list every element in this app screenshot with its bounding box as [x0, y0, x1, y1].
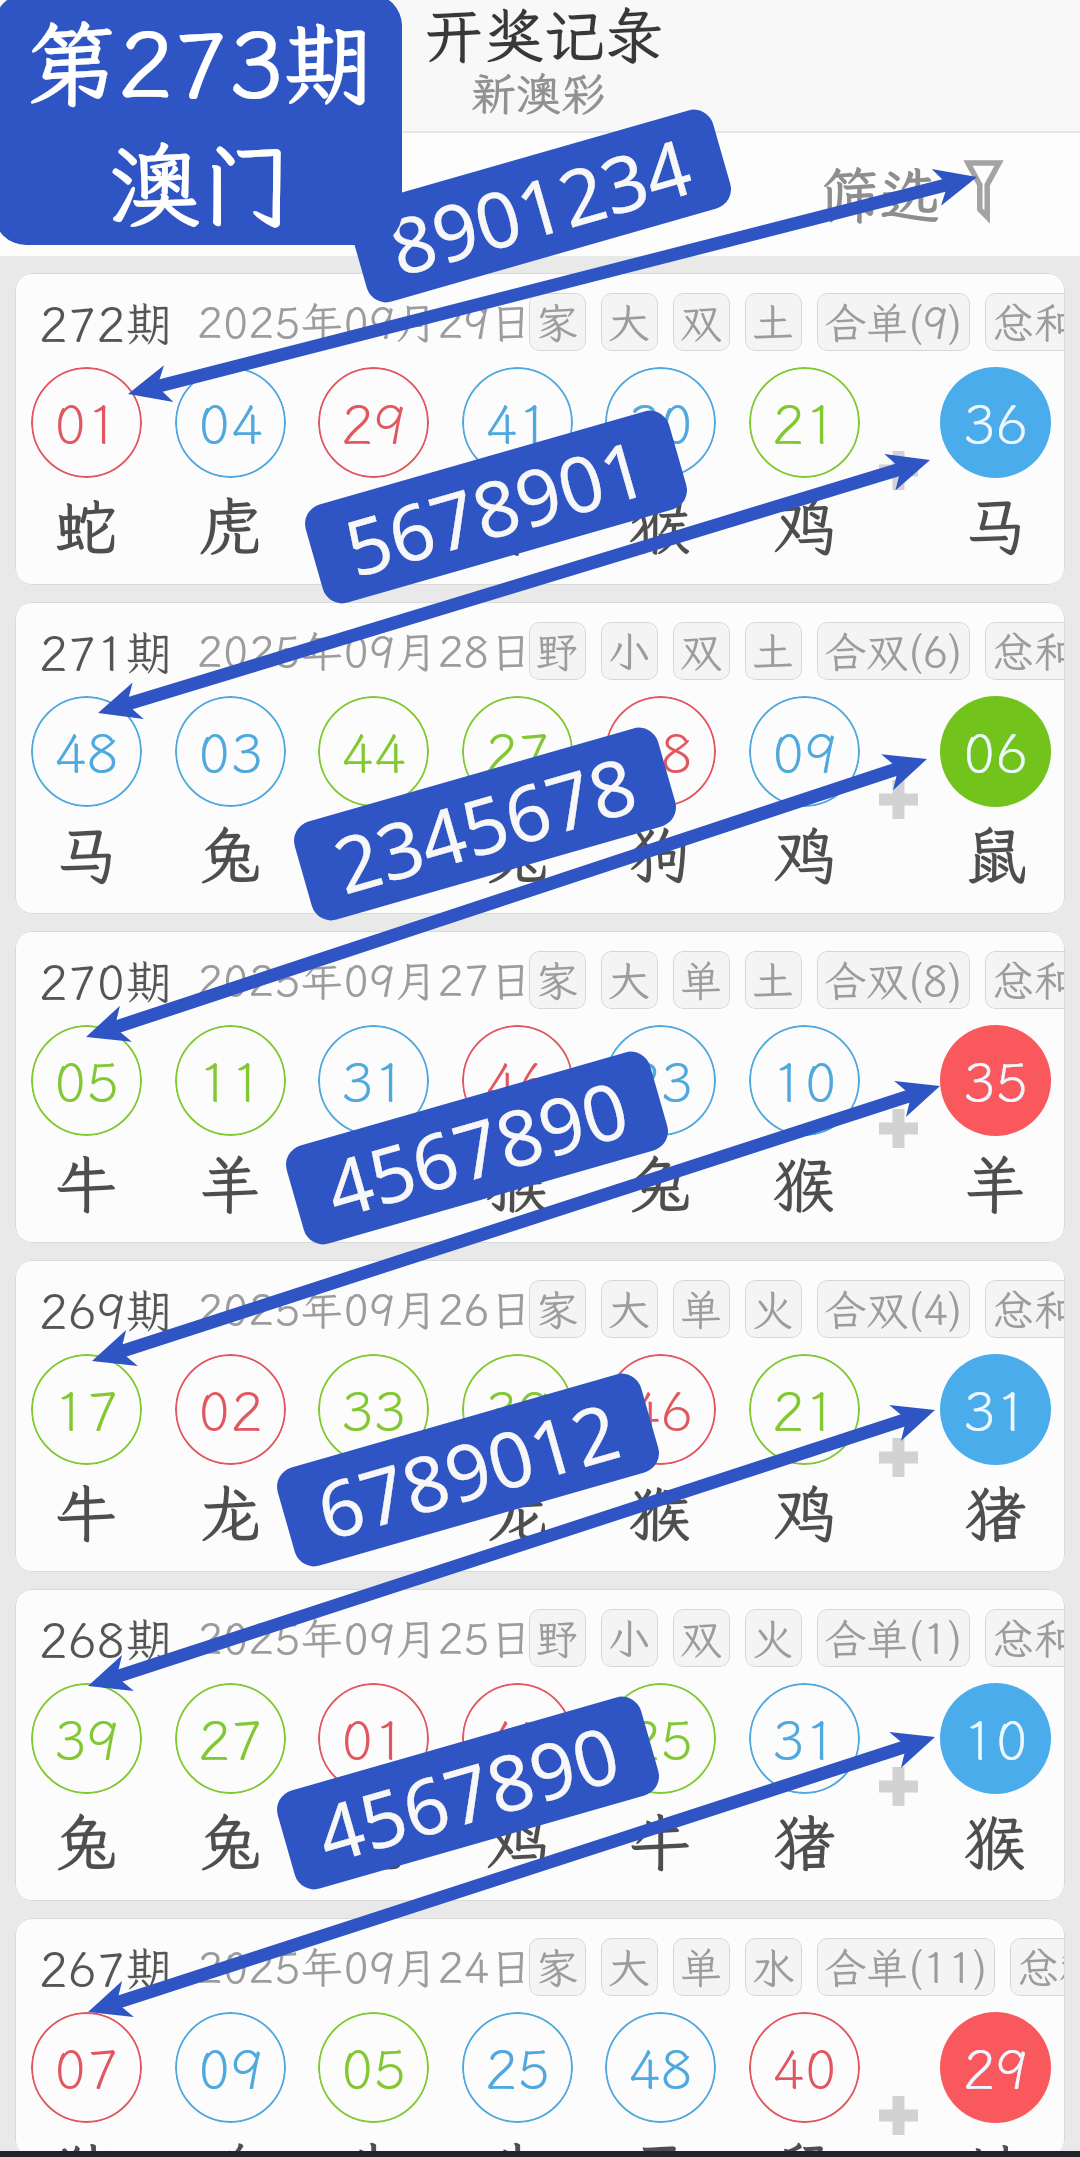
staticText: 土: [752, 624, 795, 679]
staticText: 牛: [342, 485, 405, 567]
button[interactable]: 合双(4): [817, 1280, 970, 1338]
staticText: 家: [536, 295, 579, 350]
button[interactable]: 大: [601, 293, 658, 351]
staticText: 01: [341, 1703, 406, 1774]
staticText: 狗: [629, 814, 692, 896]
staticText: 44: [341, 716, 406, 787]
staticText: 268期: [39, 1607, 174, 1670]
staticText: 合单(11): [824, 1940, 988, 1995]
button[interactable]: 270期: [15, 931, 1065, 1243]
button[interactable]: 合双(6): [817, 622, 970, 680]
button[interactable]: 家: [529, 1280, 586, 1338]
button[interactable]: 单: [673, 1280, 730, 1338]
staticText: 29: [963, 2032, 1028, 2103]
staticText: 单: [680, 1940, 723, 1995]
button[interactable]: 家: [529, 1938, 586, 1996]
button[interactable]: 合双(8): [817, 951, 970, 1009]
staticText: 火: [752, 1282, 795, 1337]
staticText: 04: [198, 387, 263, 458]
button[interactable]: 火: [745, 1280, 802, 1338]
button[interactable]: 总和: [985, 951, 1065, 1009]
staticText: 48: [54, 716, 119, 787]
button[interactable]: 大: [601, 1280, 658, 1338]
staticText: 272期: [39, 291, 174, 354]
button[interactable]: 总和: [985, 1280, 1065, 1338]
button[interactable]: 家: [529, 951, 586, 1009]
button[interactable]: 双: [673, 622, 730, 680]
staticText: 蛇: [342, 1801, 405, 1883]
staticText: 29: [341, 387, 406, 458]
staticText: 兔: [199, 814, 262, 896]
staticText: 2025年09月28日: [197, 623, 533, 680]
staticText: 总和: [992, 953, 1065, 1008]
staticText: 31: [772, 1703, 837, 1774]
button[interactable]: 筛选: [820, 155, 999, 234]
button[interactable]: 大: [601, 1938, 658, 1996]
staticText: 鼠: [773, 2130, 836, 2157]
button[interactable]: 大: [601, 951, 658, 1009]
staticText: 鸡: [773, 814, 836, 896]
staticText: 兔: [486, 814, 549, 896]
button[interactable]: 家: [529, 293, 586, 351]
staticText: 筛选: [820, 155, 940, 234]
staticText: 双: [680, 1611, 723, 1666]
button[interactable]: 269期: [15, 1260, 1065, 1572]
staticText: 27: [485, 716, 550, 787]
staticText: 09: [198, 2032, 263, 2103]
staticText: 马: [964, 485, 1027, 567]
staticText: 土: [752, 295, 795, 350]
button[interactable]: 271期: [15, 602, 1065, 914]
staticText: 水: [752, 1940, 795, 1995]
staticText: 虎: [342, 814, 405, 896]
staticText: 21: [772, 1374, 837, 1445]
button[interactable]: 单: [673, 1938, 730, 1996]
staticText: 鸡: [199, 2130, 262, 2157]
staticText: 总和: [992, 1611, 1065, 1666]
button[interactable]: 野: [529, 1609, 586, 1667]
button[interactable]: 272期: [15, 273, 1065, 585]
staticText: 野: [536, 624, 579, 679]
staticText: 牛: [342, 1472, 405, 1554]
button[interactable]: 合单(11): [817, 1938, 995, 1996]
button[interactable]: 小: [601, 1609, 658, 1667]
button[interactable]: 合单(1): [817, 1609, 970, 1667]
staticText: 虎: [342, 1143, 405, 1225]
button[interactable]: 双: [673, 1609, 730, 1667]
staticText: 猪: [55, 2130, 118, 2157]
staticText: 41: [485, 387, 550, 458]
button[interactable]: 268期: [15, 1589, 1065, 1901]
staticText: 大: [608, 1940, 651, 1995]
staticText: 27: [198, 1703, 263, 1774]
staticText: 猪: [773, 1801, 836, 1883]
button[interactable]: 野: [529, 622, 586, 680]
staticText: 兔: [629, 1143, 692, 1225]
button[interactable]: 土: [745, 951, 802, 1009]
button[interactable]: 总和: [985, 1609, 1065, 1667]
staticText: 龙: [199, 1472, 262, 1554]
staticText: 39: [54, 1703, 119, 1774]
button[interactable]: 267期: [15, 1918, 1065, 2157]
button[interactable]: 总和: [985, 622, 1065, 680]
button[interactable]: 双: [673, 293, 730, 351]
staticText: 25: [628, 1703, 693, 1774]
staticText: 单: [680, 1282, 723, 1337]
staticText: 35: [963, 1045, 1028, 1116]
staticText: 总和: [992, 295, 1065, 350]
button[interactable]: 总和: [985, 293, 1065, 351]
staticText: 11: [198, 1045, 263, 1116]
button[interactable]: 合单(9): [817, 293, 970, 351]
button[interactable]: 单: [673, 951, 730, 1009]
button[interactable]: 土: [745, 293, 802, 351]
staticText: 270期: [39, 949, 174, 1012]
staticText: 08: [628, 716, 693, 787]
button[interactable]: 小: [601, 622, 658, 680]
staticText: 39: [485, 1374, 550, 1445]
button[interactable]: 土: [745, 622, 802, 680]
button[interactable]: 总和: [1010, 1938, 1065, 1996]
staticText: 小: [608, 624, 651, 679]
staticText: 合双(8): [824, 953, 963, 1008]
staticText: 2025年09月24日: [197, 1939, 533, 1996]
staticText: 牛: [629, 1801, 692, 1883]
button[interactable]: 水: [745, 1938, 802, 1996]
button[interactable]: 火: [745, 1609, 802, 1667]
